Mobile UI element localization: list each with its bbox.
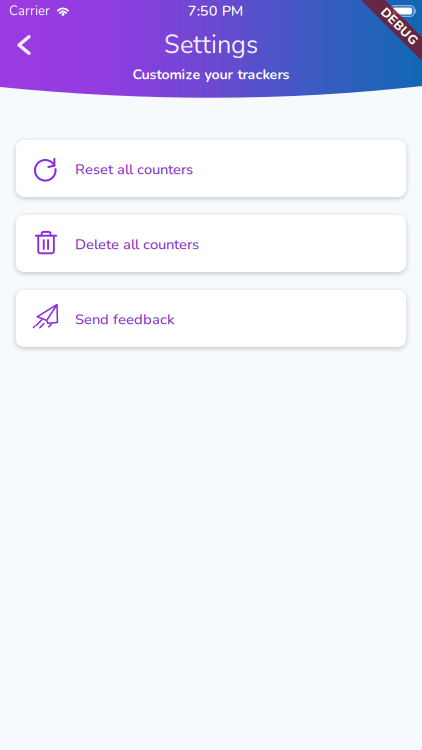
- staticText: DEBUG: [376, 17, 422, 35]
- button[interactable]: Delete all counters: [16, 215, 406, 272]
- button[interactable]: Reset all counters: [16, 140, 406, 197]
- staticText: Carrier: [9, 2, 50, 20]
- staticText: Settings: [164, 28, 258, 62]
- staticText: Delete all counters: [75, 234, 199, 255]
- staticText: 7:50 PM: [188, 1, 244, 21]
- staticText: Send feedback: [75, 309, 174, 330]
- staticText: Reset all counters: [75, 159, 193, 180]
- staticText: Customize your trackers: [132, 65, 289, 84]
- button[interactable]: Back: [2, 27, 46, 63]
- button[interactable]: Send feedback: [16, 290, 406, 347]
